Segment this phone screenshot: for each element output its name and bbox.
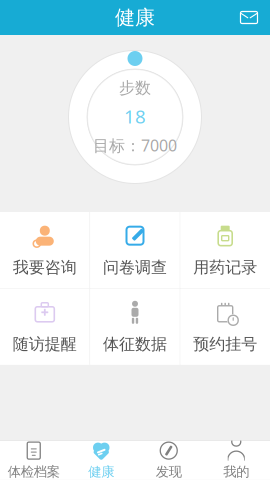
button[interactable]: 用药记录: [180, 212, 270, 288]
button[interactable]: 健康: [67, 440, 135, 480]
staticText: 体征数据: [103, 334, 167, 354]
staticText: 健康: [115, 5, 155, 30]
staticText: 随访提醒: [13, 334, 77, 354]
button[interactable]: 我要咨询: [0, 212, 90, 288]
staticText: 步数: [119, 78, 151, 98]
staticText: 用药记录: [193, 258, 257, 277]
staticText: 18: [124, 104, 146, 129]
button[interactable]: 体检档案: [0, 440, 67, 480]
button[interactable]: 体征数据: [90, 289, 180, 365]
staticText: 问卷调查: [103, 258, 167, 277]
staticText: 我要咨询: [13, 258, 77, 277]
button[interactable]: 随访提醒: [0, 289, 90, 365]
staticText: 体检档案: [8, 464, 60, 480]
staticText: 预约挂号: [193, 334, 257, 354]
button[interactable]: 发现: [135, 440, 202, 480]
staticText: 健康: [88, 464, 114, 480]
button[interactable]: 问卷调查: [90, 212, 180, 288]
button[interactable]: 预约挂号: [180, 289, 270, 365]
button[interactable]: Messages: [234, 2, 264, 32]
staticText: 发现: [156, 464, 182, 480]
staticText: 目标：7000: [93, 135, 177, 156]
button[interactable]: 我的: [202, 440, 270, 480]
staticText: 我的: [223, 464, 249, 480]
